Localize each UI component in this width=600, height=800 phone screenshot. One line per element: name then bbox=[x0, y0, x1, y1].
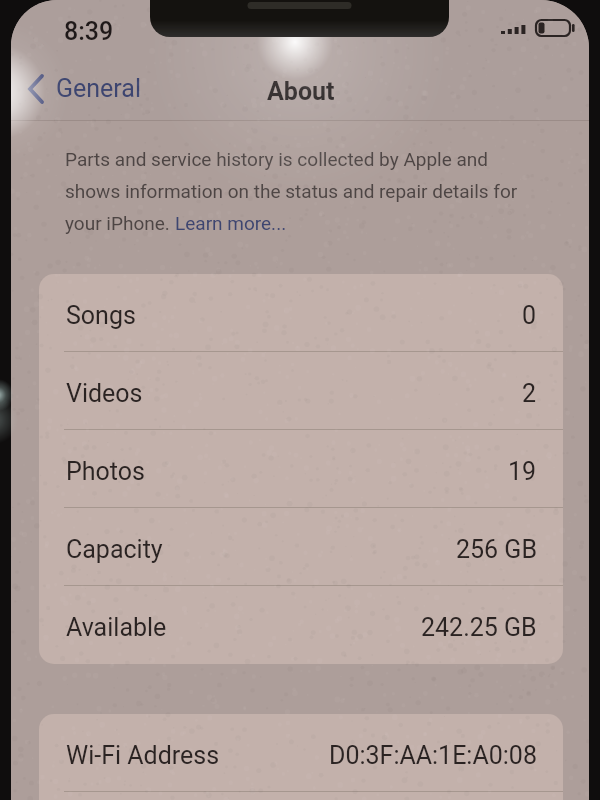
staticText: 256 GB bbox=[456, 535, 537, 564]
button[interactable]: Back to General bbox=[22, 68, 148, 110]
staticText: 242.25 GB bbox=[421, 613, 537, 642]
staticText: 0 bbox=[522, 301, 537, 330]
staticText: Photos bbox=[66, 457, 145, 486]
button[interactable]: Songs bbox=[39, 274, 563, 352]
staticText: Available bbox=[66, 613, 167, 642]
staticText: 19 bbox=[508, 457, 537, 486]
staticText: shows information on the status and repa… bbox=[65, 180, 518, 202]
button[interactable]: Available bbox=[39, 586, 563, 664]
button[interactable]: Learn more... bbox=[175, 212, 287, 234]
staticText: Capacity bbox=[66, 535, 163, 564]
other: Back to General bbox=[28, 74, 44, 104]
staticText: your iPhone. bbox=[65, 212, 175, 234]
staticText: Videos bbox=[66, 379, 143, 408]
staticText: Parts and service history is collected b… bbox=[65, 148, 489, 170]
staticText: Wi-Fi Address bbox=[66, 741, 220, 770]
button[interactable]: Wi-Fi Address bbox=[39, 714, 563, 792]
button[interactable]: Capacity bbox=[39, 508, 563, 586]
staticText: About bbox=[267, 77, 335, 106]
staticText: 8:39 bbox=[64, 17, 114, 46]
button[interactable]: Photos bbox=[39, 430, 563, 508]
staticText: D0:3F:AA:1E:A0:08 bbox=[329, 741, 537, 770]
button[interactable]: Videos bbox=[39, 352, 563, 430]
staticText: 2 bbox=[522, 379, 537, 408]
staticText: Songs bbox=[66, 301, 136, 330]
staticText: General bbox=[56, 74, 142, 103]
